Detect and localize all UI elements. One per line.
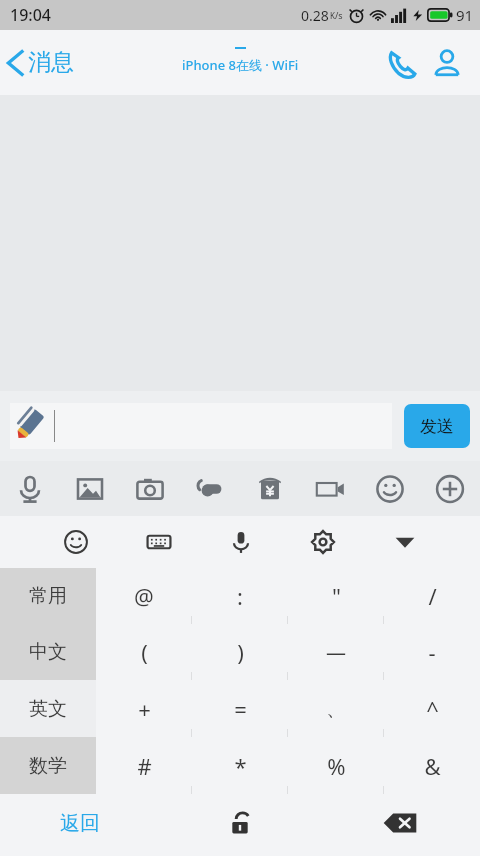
button[interactable]: Camera: [120, 461, 180, 516]
button[interactable]: 英文: [0, 680, 96, 737]
button[interactable]: (: [96, 624, 192, 680]
staticText: *: [234, 751, 247, 781]
button[interactable]: Settings: [282, 516, 364, 568]
button[interactable]: %: [288, 737, 384, 794]
staticText: /: [428, 581, 437, 611]
staticText: 、: [326, 696, 346, 721]
button[interactable]: 中文: [0, 624, 96, 680]
button[interactable]: GIF: [300, 461, 360, 516]
staticText: 中文: [29, 640, 67, 664]
button[interactable]: Keyboard layout: [117, 516, 200, 568]
button[interactable]: 、: [288, 680, 384, 737]
button[interactable]: 常用: [0, 568, 96, 624]
button[interactable]: Contact: [424, 40, 470, 86]
staticText: -: [428, 637, 436, 667]
button[interactable]: Video call: [180, 461, 240, 516]
button[interactable]: ): [192, 624, 288, 680]
button[interactable]: &: [384, 737, 480, 794]
button[interactable]: [10, 403, 392, 449]
button[interactable]: Voice input: [200, 516, 282, 568]
button[interactable]: 数学: [0, 737, 96, 794]
button[interactable]: Call: [378, 40, 424, 86]
staticText: ": [332, 581, 341, 611]
button[interactable]: #: [96, 737, 192, 794]
button[interactable]: Unlock: [160, 794, 320, 852]
staticText: &: [424, 751, 441, 781]
button[interactable]: Voice: [0, 461, 60, 516]
button[interactable]: :: [192, 568, 288, 624]
button[interactable]: =: [192, 680, 288, 737]
button[interactable]: Emoji: [360, 461, 420, 516]
staticText: K: [330, 10, 335, 21]
staticText: 数学: [29, 754, 67, 778]
button[interactable]: /: [384, 568, 480, 624]
staticText: 19:04: [10, 4, 51, 26]
staticText: 常用: [29, 584, 67, 608]
button[interactable]: *: [192, 737, 288, 794]
staticText: :: [237, 581, 243, 611]
staticText: #: [137, 751, 152, 781]
button[interactable]: 返回: [0, 794, 160, 852]
staticText: 英文: [29, 697, 67, 721]
staticText: (: [141, 637, 148, 667]
staticText: =: [234, 694, 247, 724]
staticText: —: [326, 639, 346, 666]
staticText: %: [327, 751, 346, 781]
button[interactable]: ": [288, 568, 384, 624]
button[interactable]: @: [96, 568, 192, 624]
staticText: iPhone 8在线 · WiFi: [182, 56, 299, 74]
staticText: 消息: [28, 48, 74, 77]
staticText: 返回: [60, 811, 100, 836]
button[interactable]: -: [384, 624, 480, 680]
staticText: ): [237, 637, 244, 667]
staticText: 发送: [420, 416, 454, 437]
button[interactable]: Red packet: [240, 461, 300, 516]
button[interactable]: +: [96, 680, 192, 737]
button[interactable]: ^: [384, 680, 480, 737]
button[interactable]: More: [420, 461, 480, 516]
staticText: 0.28: [301, 6, 329, 25]
button[interactable]: Emoji: [34, 516, 117, 568]
staticText: ^: [426, 694, 439, 724]
staticText: @: [134, 581, 154, 611]
button[interactable]: —: [288, 624, 384, 680]
staticText: /s: [335, 9, 343, 21]
button[interactable]: 发送: [404, 404, 470, 448]
staticText: +: [138, 694, 151, 724]
button[interactable]: 消息: [0, 42, 82, 83]
button[interactable]: Backspace: [320, 794, 480, 852]
staticText: 91: [456, 5, 474, 25]
button[interactable]: Hide keyboard: [364, 516, 446, 568]
button[interactable]: Photo: [60, 461, 120, 516]
